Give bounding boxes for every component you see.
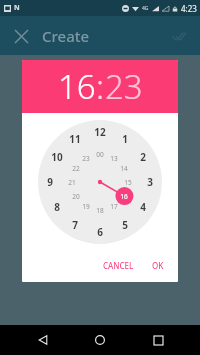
staticText: 22 (72, 164, 80, 173)
staticText: 23 (82, 154, 90, 163)
staticText: 10 (51, 150, 63, 164)
button[interactable]: 19 (77, 197, 95, 215)
button[interactable]: 7 (66, 216, 84, 234)
button[interactable]: 14 (115, 159, 133, 177)
staticText: 11 (69, 132, 81, 146)
button[interactable]: Close (6, 21, 36, 51)
staticText: 9 (47, 175, 53, 189)
button[interactable]: 11 (66, 130, 84, 148)
button[interactable]: Done (164, 21, 194, 51)
staticText: 1 (122, 132, 128, 146)
staticText: 5 (122, 218, 128, 232)
button[interactable]: 15 (119, 173, 137, 191)
staticText: 15 (124, 178, 132, 187)
staticText: 4G (142, 5, 149, 12)
button[interactable]: 13 (105, 149, 123, 167)
button[interactable]: 2 (134, 148, 152, 166)
staticText: CANCEL (103, 260, 134, 271)
button[interactable]: 6 (91, 223, 109, 241)
staticText: : (96, 64, 105, 109)
button[interactable]: 17 (105, 197, 123, 215)
staticText: 2 (140, 150, 146, 164)
button[interactable]: 3 (141, 173, 159, 191)
staticText: Create (42, 26, 90, 46)
button[interactable]: 4 (134, 198, 152, 216)
button[interactable]: 12 (91, 123, 109, 141)
staticText: 19 (82, 202, 90, 211)
button[interactable]: Recents (143, 325, 173, 355)
staticText: 6 (97, 225, 103, 239)
button[interactable]: 16 (115, 187, 133, 205)
button[interactable]: 00 (91, 145, 109, 163)
staticText: 00 (96, 150, 104, 159)
button[interactable]: 8 (48, 198, 66, 216)
button[interactable]: 21 (63, 173, 81, 191)
button[interactable]: 1 (116, 130, 134, 148)
staticText: 8 (54, 200, 60, 214)
button[interactable]: 23 (105, 64, 143, 109)
staticText: 13 (110, 154, 118, 163)
staticText: 18 (96, 206, 104, 215)
button[interactable]: 9 (41, 173, 59, 191)
button[interactable]: OK (146, 256, 170, 275)
button[interactable]: Home (85, 325, 115, 355)
button[interactable]: 5 (116, 216, 134, 234)
staticText: 3 (147, 175, 153, 189)
staticText: 12 (94, 125, 106, 139)
staticText: 17 (110, 202, 118, 211)
button[interactable]: 10 (48, 148, 66, 166)
staticText: 7 (72, 218, 78, 232)
button[interactable]: Back (28, 325, 58, 355)
button[interactable]: 18 (91, 201, 109, 219)
button[interactable]: 23 (77, 149, 95, 167)
staticText: 4:23 (181, 3, 197, 14)
button[interactable]: 22 (67, 159, 85, 177)
staticText: 20 (72, 192, 80, 201)
staticText: OK (152, 260, 164, 271)
button[interactable]: 20 (67, 187, 85, 205)
staticText: 14 (120, 164, 128, 173)
staticText: N (14, 3, 20, 13)
button[interactable]: CANCEL (97, 256, 140, 275)
button[interactable]: 16 (58, 64, 96, 109)
staticText: 16 (120, 192, 128, 201)
staticText: 4 (140, 200, 146, 214)
staticText: 21 (68, 178, 76, 187)
